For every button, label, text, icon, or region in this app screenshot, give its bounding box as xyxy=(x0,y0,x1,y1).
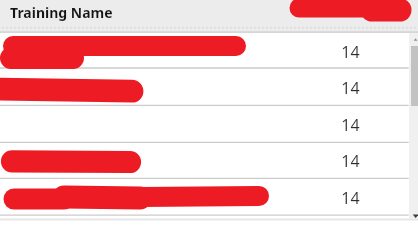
button[interactable]: 14 xyxy=(0,68,418,105)
button[interactable]: Scroll bar xyxy=(409,33,418,219)
staticText: 14 xyxy=(341,77,360,99)
staticText: 14 xyxy=(341,150,360,172)
staticText: 14 xyxy=(341,114,360,136)
button[interactable]: 14 xyxy=(0,178,418,215)
button[interactable]: 14 xyxy=(0,33,418,68)
button[interactable]: 14 xyxy=(0,142,418,178)
staticText: 14 xyxy=(341,187,360,209)
button[interactable]: 14 xyxy=(0,105,418,142)
staticText: Training Name xyxy=(10,3,113,22)
button[interactable]: Training Name xyxy=(0,0,418,32)
staticText: 14 xyxy=(341,41,360,63)
